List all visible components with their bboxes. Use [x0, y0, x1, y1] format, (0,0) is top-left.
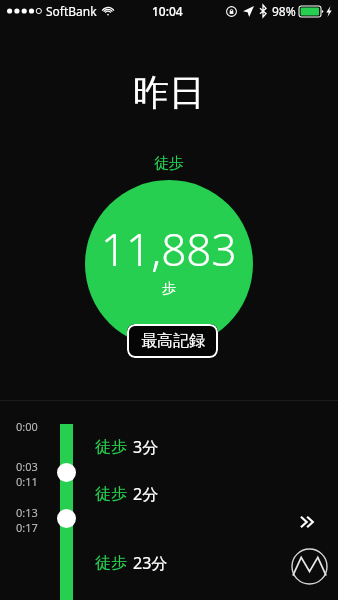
staticText: 0:00 — [16, 419, 38, 434]
button[interactable]: 11,883 — [85, 180, 253, 348]
staticText: 徒歩 — [95, 484, 127, 504]
staticText: 徒歩 — [154, 154, 184, 173]
staticText: 0:03 — [16, 459, 38, 474]
staticText: 徒歩 — [95, 437, 127, 457]
staticText: 0:11 — [16, 474, 38, 489]
staticText: 歩 — [162, 280, 176, 298]
staticText: 3分 — [133, 436, 159, 458]
staticText: 0:17 — [16, 520, 38, 535]
button[interactable]: 最高記録 — [127, 324, 218, 358]
button[interactable]: 次へ — [288, 502, 328, 542]
button[interactable]: 徒歩 — [95, 552, 168, 574]
staticText: 23分 — [133, 552, 168, 574]
staticText: 10:04 — [152, 3, 183, 19]
staticText: 0:13 — [16, 505, 38, 520]
staticText: 徒歩 — [95, 553, 127, 573]
staticText: SoftBank — [46, 3, 97, 19]
button[interactable]: Moves — [291, 548, 328, 585]
button[interactable]: 徒歩 — [95, 436, 159, 458]
staticText: 最高記録 — [141, 331, 205, 351]
staticText: 11,883 — [101, 219, 237, 279]
staticText: 昨日 — [133, 70, 205, 115]
staticText: 2分 — [133, 483, 159, 505]
staticText: 98% — [272, 3, 296, 19]
button[interactable]: 徒歩 — [95, 483, 159, 505]
